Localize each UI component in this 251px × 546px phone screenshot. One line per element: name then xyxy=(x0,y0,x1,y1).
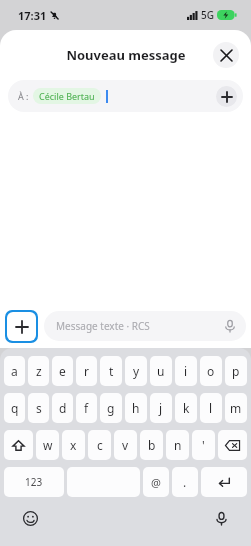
staticText: v xyxy=(122,437,129,453)
staticText: h xyxy=(132,400,140,416)
button[interactable]: Dictée vocale xyxy=(211,508,231,528)
staticText: 123 xyxy=(25,475,43,489)
staticText: n xyxy=(174,437,182,453)
staticText: 17:31 xyxy=(18,8,47,23)
button[interactable]: ' xyxy=(192,430,215,460)
button[interactable]: Maj xyxy=(4,430,33,460)
staticText: r xyxy=(84,363,89,379)
button[interactable]: e xyxy=(52,356,73,386)
button[interactable]: Supprimer xyxy=(218,430,247,460)
button[interactable]: Emoji xyxy=(20,508,40,528)
button[interactable]: Ajouter une pièce jointe xyxy=(7,312,36,341)
button[interactable]: i xyxy=(175,356,197,386)
button[interactable]: s xyxy=(28,393,49,423)
button[interactable]: v xyxy=(114,430,137,460)
staticText: À : xyxy=(18,90,29,102)
staticText: c xyxy=(97,437,103,453)
button[interactable]: À : xyxy=(8,80,243,112)
button[interactable]: j xyxy=(150,393,172,423)
staticText: d xyxy=(59,400,67,416)
staticText: Message texte · RCS xyxy=(56,319,150,333)
button[interactable]: h xyxy=(125,393,147,423)
staticText: t xyxy=(109,363,114,379)
staticText: Cécile Bertau xyxy=(39,90,95,102)
button[interactable]: Fermer xyxy=(213,42,239,68)
staticText: b xyxy=(148,437,156,453)
button[interactable]: z xyxy=(28,356,49,386)
staticText: z xyxy=(36,363,42,379)
staticText: q xyxy=(11,400,19,416)
staticText: i xyxy=(184,363,188,379)
button[interactable]: f xyxy=(76,393,97,423)
button[interactable]: 123 xyxy=(4,467,64,497)
staticText: s xyxy=(36,400,42,416)
button[interactable]: Message vocal xyxy=(223,319,237,333)
staticText: k xyxy=(183,400,190,416)
button[interactable]: o xyxy=(200,356,222,386)
staticText: w xyxy=(43,437,53,453)
staticText: x xyxy=(70,437,77,453)
staticText: e xyxy=(59,363,66,379)
button[interactable]: r xyxy=(76,356,97,386)
staticText: f xyxy=(84,400,89,416)
button[interactable]: y xyxy=(125,356,147,386)
button[interactable]: Message texte · RCS xyxy=(44,311,246,341)
staticText: g xyxy=(107,400,115,416)
staticText: Nouveau message xyxy=(66,46,186,64)
staticText: ' xyxy=(202,437,205,453)
button[interactable]: t xyxy=(100,356,122,386)
button[interactable]: w xyxy=(36,430,59,460)
button[interactable]: b xyxy=(140,430,163,460)
button[interactable]: @ xyxy=(143,467,169,497)
button[interactable]: k xyxy=(175,393,197,423)
button[interactable]: x xyxy=(62,430,85,460)
staticText: . xyxy=(183,474,187,490)
button[interactable]: a xyxy=(4,356,25,386)
button[interactable]: Entrée xyxy=(201,467,247,497)
button[interactable]: . xyxy=(172,467,198,497)
staticText: j xyxy=(159,400,163,416)
button[interactable]: Ajouter un contact xyxy=(216,86,237,107)
staticText: u xyxy=(157,363,165,379)
staticText: a xyxy=(11,363,18,379)
button[interactable]: u xyxy=(150,356,172,386)
button[interactable]: d xyxy=(52,393,73,423)
staticText: o xyxy=(207,363,215,379)
button[interactable]: q xyxy=(4,393,25,423)
staticText: m xyxy=(230,400,242,416)
button[interactable]: c xyxy=(88,430,111,460)
staticText: l xyxy=(209,400,213,416)
staticText: y xyxy=(133,363,140,379)
button[interactable]: m xyxy=(225,393,247,423)
button[interactable]: g xyxy=(100,393,122,423)
button[interactable]: l xyxy=(200,393,222,423)
button[interactable]: p xyxy=(225,356,247,386)
staticText: p xyxy=(232,363,240,379)
staticText: 5G xyxy=(201,8,214,22)
staticText: @ xyxy=(151,475,161,490)
button[interactable]: n xyxy=(166,430,189,460)
